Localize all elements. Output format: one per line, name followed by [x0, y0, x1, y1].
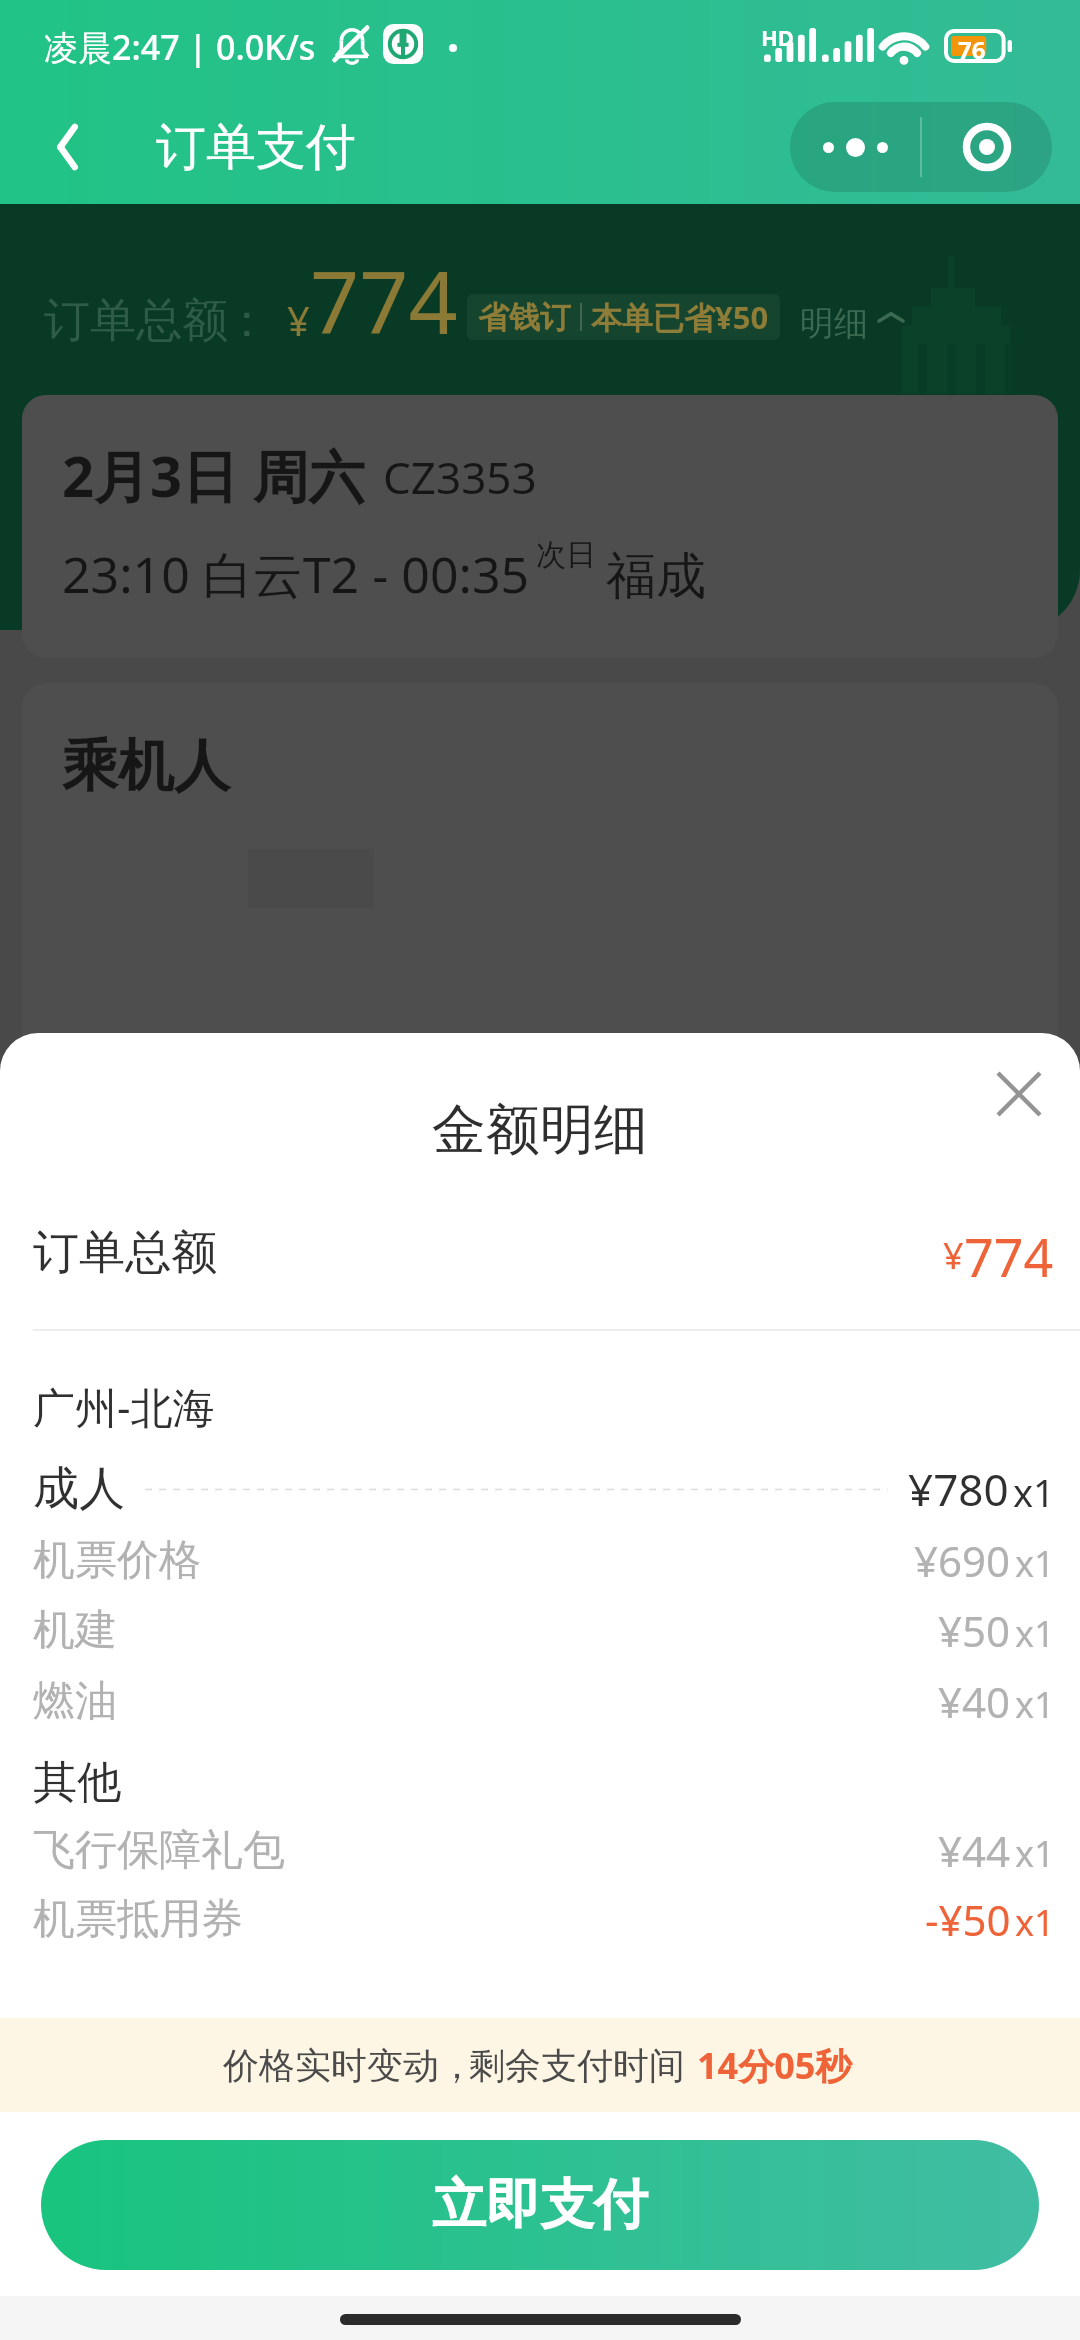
staticText: ¥44 [938, 1822, 1011, 1879]
staticText: 剩余支付时间 [469, 2043, 685, 2088]
staticText: 其他 [33, 1755, 121, 1810]
staticText: 774 [964, 1221, 1054, 1285]
button[interactable]: Close [975, 1050, 1063, 1138]
staticText: ¥780 [908, 1459, 1009, 1519]
staticText: ¥50 [938, 1602, 1011, 1659]
staticText: 774 [310, 242, 458, 359]
staticText: x1 [1015, 1680, 1055, 1729]
staticText: 燃油 [33, 1675, 117, 1728]
button[interactable]: 立即支付 [41, 2140, 1039, 2270]
staticText: 乘机人 [62, 731, 230, 802]
button[interactable]: 2月3日 周六 [22, 395, 1058, 658]
staticText: ¥690 [914, 1532, 1011, 1589]
staticText: 福成 [606, 545, 706, 608]
staticText: HD [761, 22, 794, 52]
staticText: ¥ [287, 293, 310, 347]
staticText: CZ3353 [383, 447, 537, 507]
staticText: 机票价格 [33, 1534, 201, 1587]
staticText: -¥50 [925, 1891, 1011, 1948]
staticText: 14分05秒 [697, 2041, 852, 2090]
staticText: ¥ [943, 1231, 964, 1280]
staticText: 飞行保障礼包 [33, 1824, 285, 1877]
staticText: 机票抵用券 [33, 1893, 243, 1946]
staticText: 本单已省¥50 [591, 296, 769, 338]
staticText: x1 [1015, 1829, 1055, 1878]
staticText: 广州-北海 [33, 1378, 215, 1435]
button[interactable]: Back [26, 104, 112, 190]
staticText: 2月3日 周六 [62, 437, 365, 513]
button[interactable]: More options and close mini program [790, 102, 1052, 192]
staticText: x1 [1015, 1898, 1055, 1947]
staticText: 订单总额 [44, 292, 228, 350]
staticText: 成人 [33, 1460, 125, 1518]
button[interactable]: 省钱订 [467, 294, 780, 340]
staticText: 机建 [33, 1604, 117, 1657]
staticText: 次日 [536, 536, 596, 574]
staticText: ： [224, 292, 270, 350]
staticText: x1 [1015, 1609, 1055, 1658]
staticText: 凌晨2:47 | 0.0K/s [44, 24, 316, 70]
staticText: x1 [1015, 1539, 1055, 1588]
staticText: 订单支付 [156, 116, 356, 179]
staticText: 金额明细 [432, 1096, 648, 1164]
button[interactable]: 明细 [800, 302, 904, 345]
staticText: ¥40 [938, 1673, 1011, 1730]
staticText: 明细 [800, 302, 868, 345]
staticText: 76 [958, 33, 986, 66]
staticText: 订单总额 [33, 1224, 217, 1282]
staticText: 立即支付 [432, 2171, 648, 2239]
staticText: 省钱订 [478, 298, 571, 337]
button[interactable]: 乘机人 [22, 683, 1058, 1063]
staticText: x1 [1013, 1466, 1055, 1518]
staticText: 23:10 白云T2 - 00:35 [62, 540, 530, 608]
staticText: 价格实时变动， [223, 2043, 475, 2088]
